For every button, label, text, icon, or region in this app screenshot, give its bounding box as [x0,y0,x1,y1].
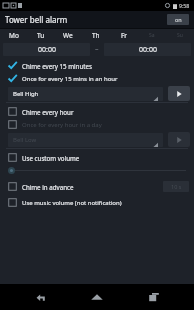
staticText: Bell High [13,90,39,98]
staticText: Chime every 15 minutes [22,62,92,70]
staticText: Tower bell alarm [5,14,167,25]
staticText: We [63,31,73,40]
staticText: Fr [121,31,128,40]
staticText: – [95,44,99,54]
button[interactable]: Tu [27,29,54,42]
staticText: 10 s [171,183,182,190]
button[interactable]: Use custom volume [0,151,194,164]
staticText: Bell Low [13,136,37,144]
button[interactable]: 00:00 [3,43,90,56]
staticText: Chime every hour [22,108,74,116]
staticText: Chime in advance [22,183,74,191]
button[interactable]: Recent apps [138,284,170,310]
button[interactable]: Bell Low [8,133,163,147]
button[interactable]: Chime every 15 minutes [0,59,194,72]
button[interactable]: We [54,29,82,42]
button[interactable]: Play sound preview [168,86,190,101]
button[interactable]: Chime in advance [8,179,163,194]
staticText: Su [177,32,183,39]
staticText: Mo [9,31,19,40]
button[interactable]: Su [166,29,194,42]
staticText: 00:00 [38,45,56,55]
staticText: Sa [149,32,155,39]
staticText: Tu [37,31,45,40]
button[interactable]: Chime every hour [0,105,194,118]
button[interactable] [8,164,186,176]
button[interactable]: Play sound preview [168,132,190,147]
button[interactable]: Home [81,284,113,310]
button[interactable]: 10 s [163,181,189,192]
button[interactable]: Th [82,29,110,42]
staticText: Use music volume (not notification) [22,199,122,207]
staticText: Th [92,31,100,40]
button[interactable]: on [167,14,189,25]
button[interactable]: Bell High [8,87,163,101]
staticText: 00:00 [139,45,157,55]
button[interactable]: Fr [110,29,138,42]
staticText: Once for every 15 mins in an hour [22,75,118,83]
button[interactable]: Mo [0,29,27,42]
button[interactable]: 00:00 [104,43,191,56]
button[interactable]: Once for every 15 mins in an hour [0,72,194,85]
staticText: Use custom volume [22,154,80,162]
staticText: on [175,16,182,23]
button[interactable]: Once for every hour in a day [0,118,194,131]
button[interactable]: Use music volume (not notification) [0,196,194,209]
staticText: Once for every hour in a day [22,121,102,129]
button[interactable]: Sa [138,29,166,42]
button[interactable]: Back [25,284,57,310]
staticText: 9:58 [179,2,190,9]
